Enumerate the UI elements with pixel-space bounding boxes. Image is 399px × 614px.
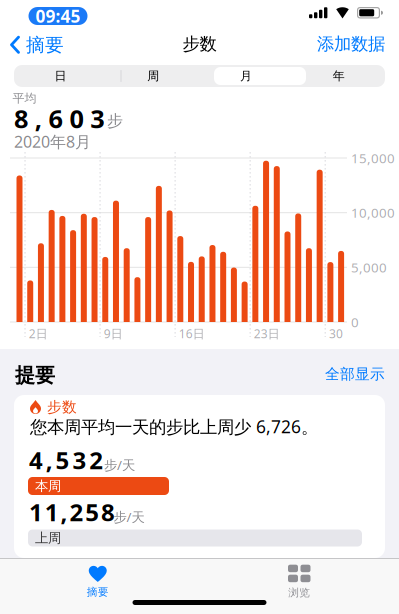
staticText: 步数: [182, 33, 216, 55]
button[interactable]: 周: [107, 65, 200, 87]
staticText: 月: [240, 69, 252, 83]
staticText: 步/天: [113, 508, 144, 526]
staticText: 日: [54, 69, 66, 83]
button[interactable]: 时间: [28, 4, 87, 27]
staticText: 您本周平均一天的步比上周少 6,726。: [30, 415, 318, 438]
staticText: 全部显示: [325, 365, 385, 383]
button[interactable]: 全部显示: [285, 365, 385, 383]
staticText: 上周: [35, 530, 61, 546]
button[interactable]: 浏览: [239, 559, 359, 605]
button[interactable]: 日: [14, 65, 107, 87]
button[interactable]: 年: [292, 65, 385, 87]
staticText: 5,000: [351, 258, 387, 276]
staticText: 平均: [12, 91, 36, 106]
button[interactable]: 摘要: [38, 559, 158, 605]
staticText: 步数: [47, 398, 77, 416]
staticText: 摘要: [26, 33, 64, 56]
staticText: 年: [333, 69, 345, 83]
staticText: 15,000: [351, 149, 395, 167]
staticText: 11,258: [29, 496, 115, 528]
button[interactable]: 添加数据: [285, 34, 385, 54]
staticText: 16日: [179, 325, 205, 341]
staticText: 步: [107, 111, 123, 131]
button[interactable]: 步数: [14, 395, 385, 558]
staticText: 09:45: [35, 4, 80, 27]
staticText: 本周: [35, 478, 61, 494]
staticText: 9日: [104, 325, 123, 341]
staticText: 浏览: [288, 586, 310, 599]
staticText: 10,000: [351, 204, 395, 221]
staticText: 提要: [15, 363, 55, 388]
staticText: 0: [351, 313, 359, 331]
staticText: 23日: [254, 325, 280, 341]
staticText: 步/天: [104, 456, 135, 474]
button[interactable]: 返回摘要: [10, 33, 64, 56]
staticText: 30: [329, 325, 343, 341]
staticText: 添加数据: [317, 33, 385, 55]
button[interactable]: 月: [199, 65, 292, 87]
staticText: 摘要: [87, 585, 109, 598]
staticText: 2日: [29, 325, 48, 341]
staticText: 4,532: [29, 444, 103, 476]
staticText: 周: [147, 69, 159, 83]
staticText: 8,603: [14, 101, 104, 135]
staticText: 2020年8月: [14, 131, 91, 152]
